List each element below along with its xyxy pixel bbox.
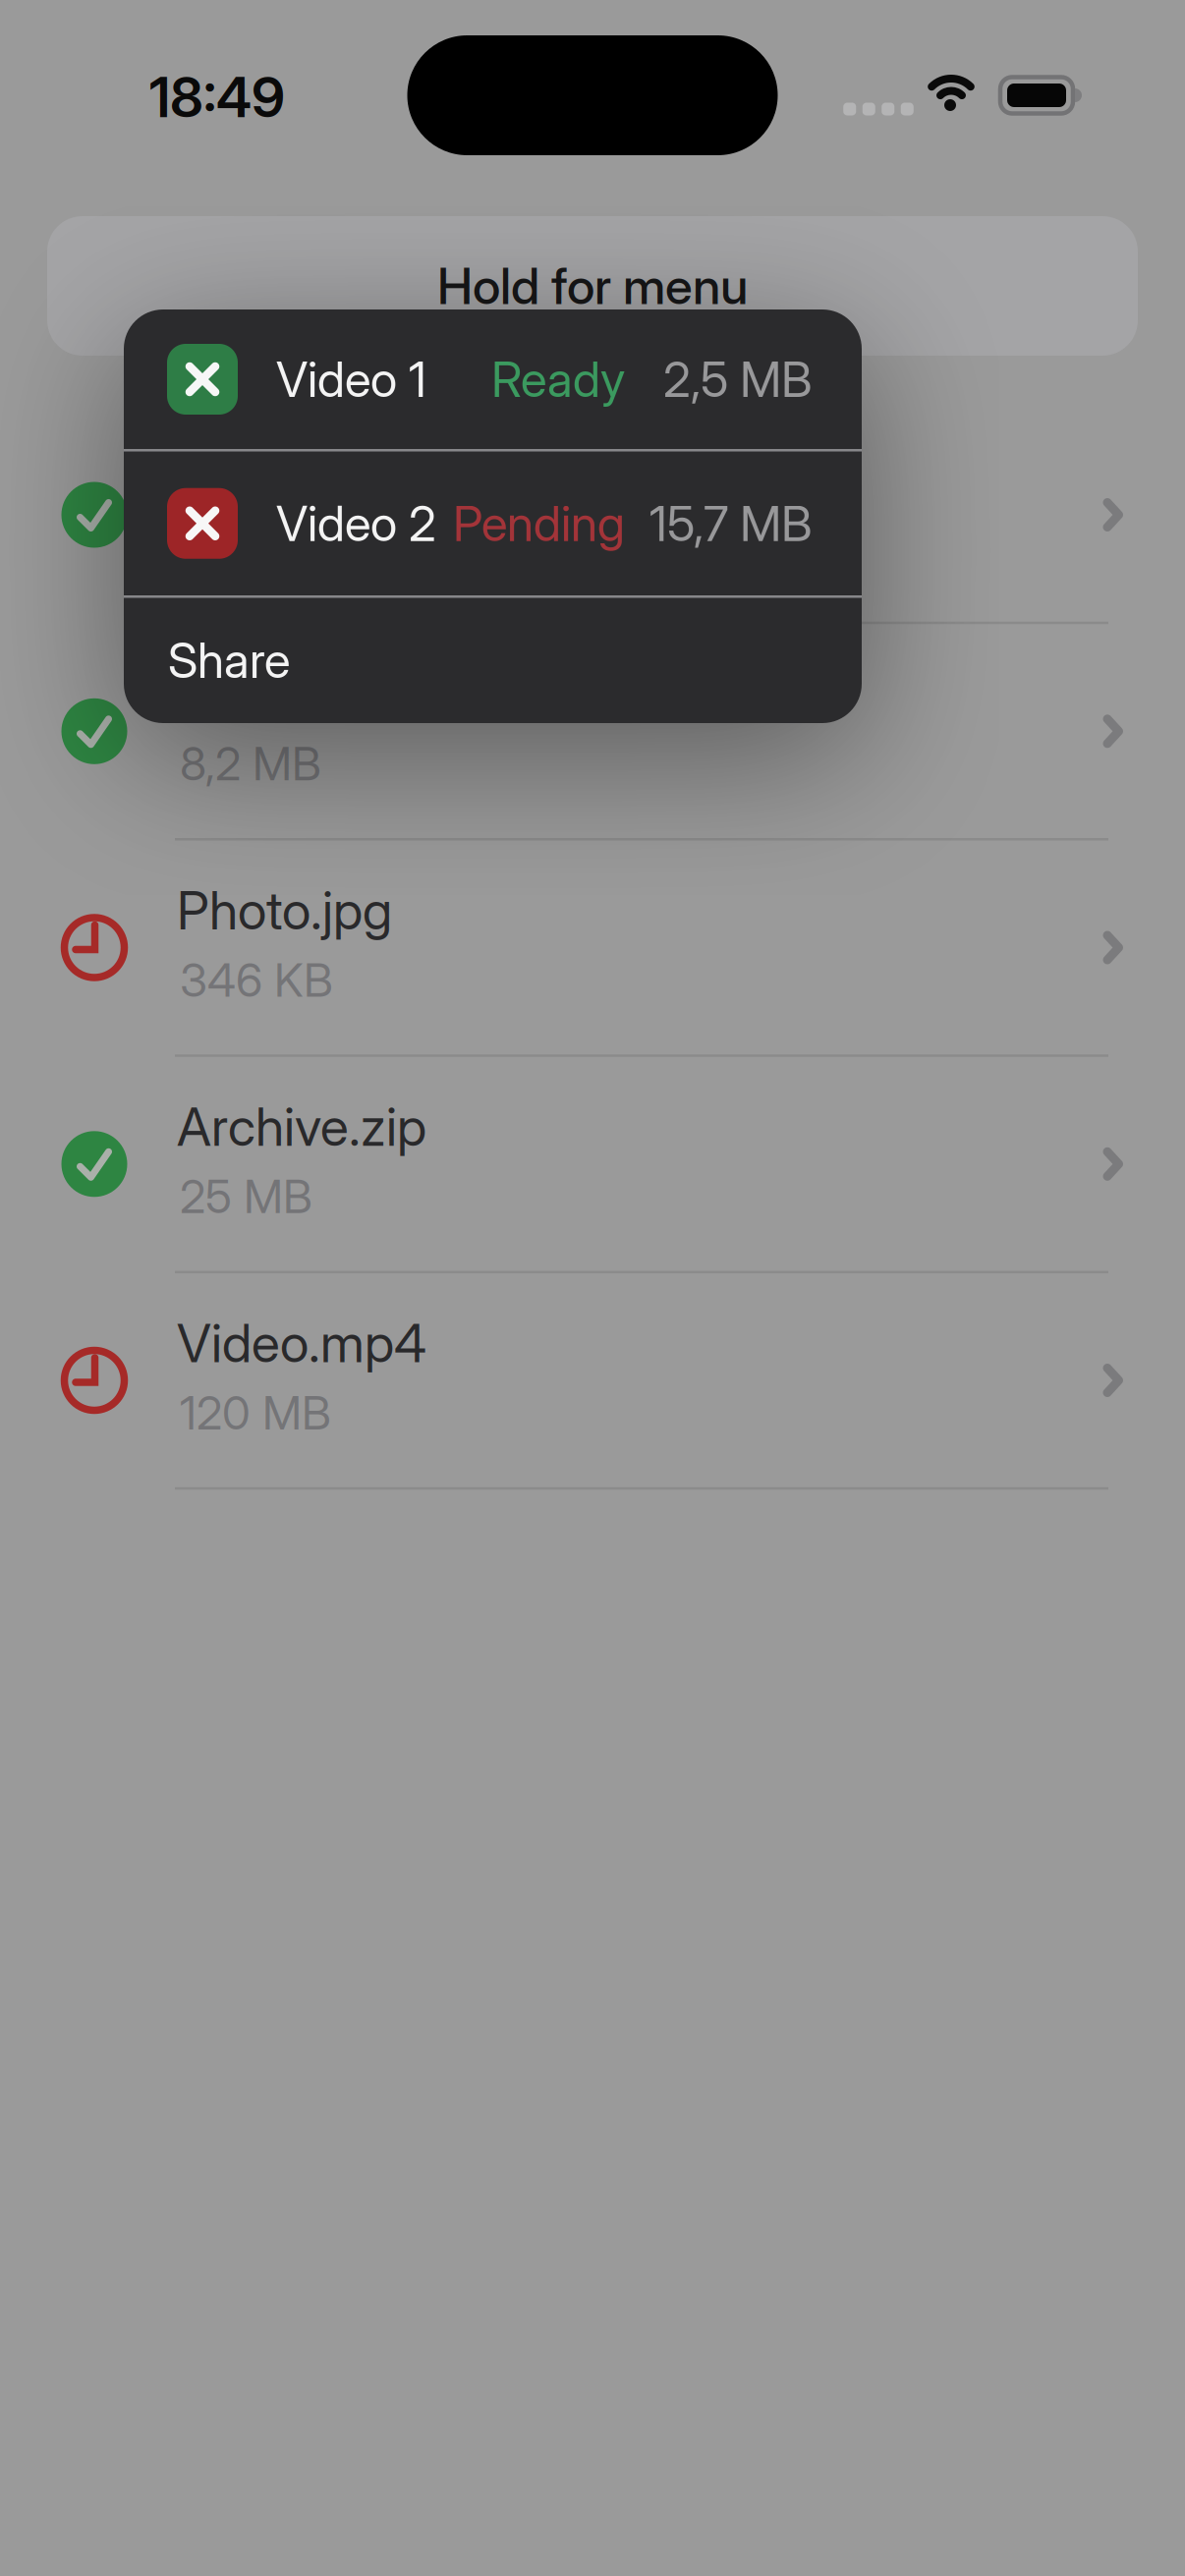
staticText: Hold for menu bbox=[437, 257, 748, 315]
staticText: Music.m4a bbox=[177, 663, 429, 725]
staticText: 2,5 MB bbox=[663, 351, 812, 408]
button[interactable]: Video.mp4 bbox=[0, 1272, 1185, 1488]
staticText: Video.mp4 bbox=[177, 1312, 426, 1374]
button[interactable]: Hold for menu bbox=[47, 216, 1138, 356]
staticText: Video 1 bbox=[276, 351, 426, 408]
button[interactable]: Archive.zip bbox=[0, 1056, 1185, 1272]
staticText: 346 KB bbox=[180, 953, 333, 1007]
button[interactable]: Doc.pdf bbox=[0, 407, 1185, 623]
staticText: 25 MB bbox=[180, 1169, 312, 1224]
button[interactable]: Video 1 bbox=[124, 309, 862, 449]
staticText: Pending bbox=[453, 495, 625, 552]
staticText: Doc.pdf bbox=[177, 447, 356, 508]
staticText: 18:49 bbox=[149, 65, 285, 130]
button[interactable]: Share bbox=[124, 598, 862, 723]
staticText: 1,2 MB bbox=[180, 520, 312, 574]
staticText: Archive.zip bbox=[177, 1096, 426, 1158]
staticText: Share bbox=[168, 632, 290, 689]
staticText: 15,7 MB bbox=[649, 495, 812, 552]
button[interactable]: Music.m4a bbox=[0, 623, 1185, 839]
staticText: Photo.jpg bbox=[177, 879, 392, 941]
button[interactable]: Photo.jpg bbox=[0, 840, 1185, 1056]
staticText: 120 MB bbox=[180, 1386, 331, 1440]
staticText: Video 2 bbox=[276, 495, 436, 552]
staticText: Ready bbox=[491, 351, 625, 408]
staticText: 8,2 MB bbox=[180, 737, 321, 791]
button[interactable]: Video 2 bbox=[124, 451, 862, 595]
